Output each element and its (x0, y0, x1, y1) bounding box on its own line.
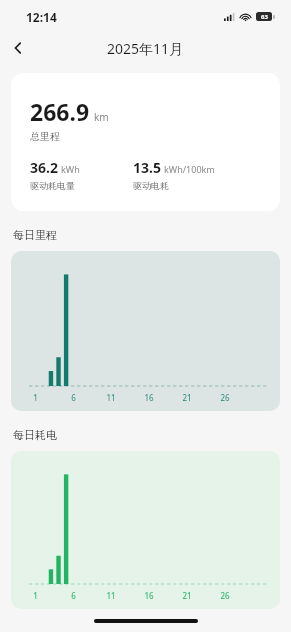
staticText: 16 (144, 590, 154, 601)
staticText: 2025年11月 (107, 39, 184, 58)
button[interactable]: 1 (11, 251, 280, 411)
button[interactable]: 266.9 (11, 73, 280, 211)
staticText: 每日耗电 (13, 428, 57, 442)
staticText: 11 (106, 392, 116, 403)
staticText: 21 (182, 590, 192, 601)
button[interactable]: 1 (11, 451, 280, 609)
button[interactable]: Back (5, 35, 31, 61)
staticText: km (94, 110, 109, 124)
staticText: 21 (182, 392, 192, 403)
staticText: 驱动电耗 (133, 180, 169, 191)
staticText: 11 (106, 590, 116, 601)
staticText: 总里程 (30, 130, 60, 143)
staticText: 每日里程 (13, 228, 57, 242)
staticText: 6 (71, 392, 76, 403)
staticText: 26 (220, 392, 230, 403)
staticText: 1 (33, 392, 38, 403)
staticText: 266.9 (30, 96, 90, 127)
staticText: 36.2 (30, 158, 58, 177)
staticText: 16 (144, 392, 154, 403)
staticText: 13.5 (133, 158, 161, 177)
staticText: 12:14 (26, 9, 57, 25)
staticText: kWh (61, 163, 80, 175)
staticText: 63 (261, 13, 268, 21)
staticText: kWh/100km (164, 163, 215, 175)
staticText: 26 (220, 590, 230, 601)
staticText: 6 (71, 590, 76, 601)
staticText: 1 (33, 590, 38, 601)
staticText: 驱动耗电量 (30, 180, 75, 191)
